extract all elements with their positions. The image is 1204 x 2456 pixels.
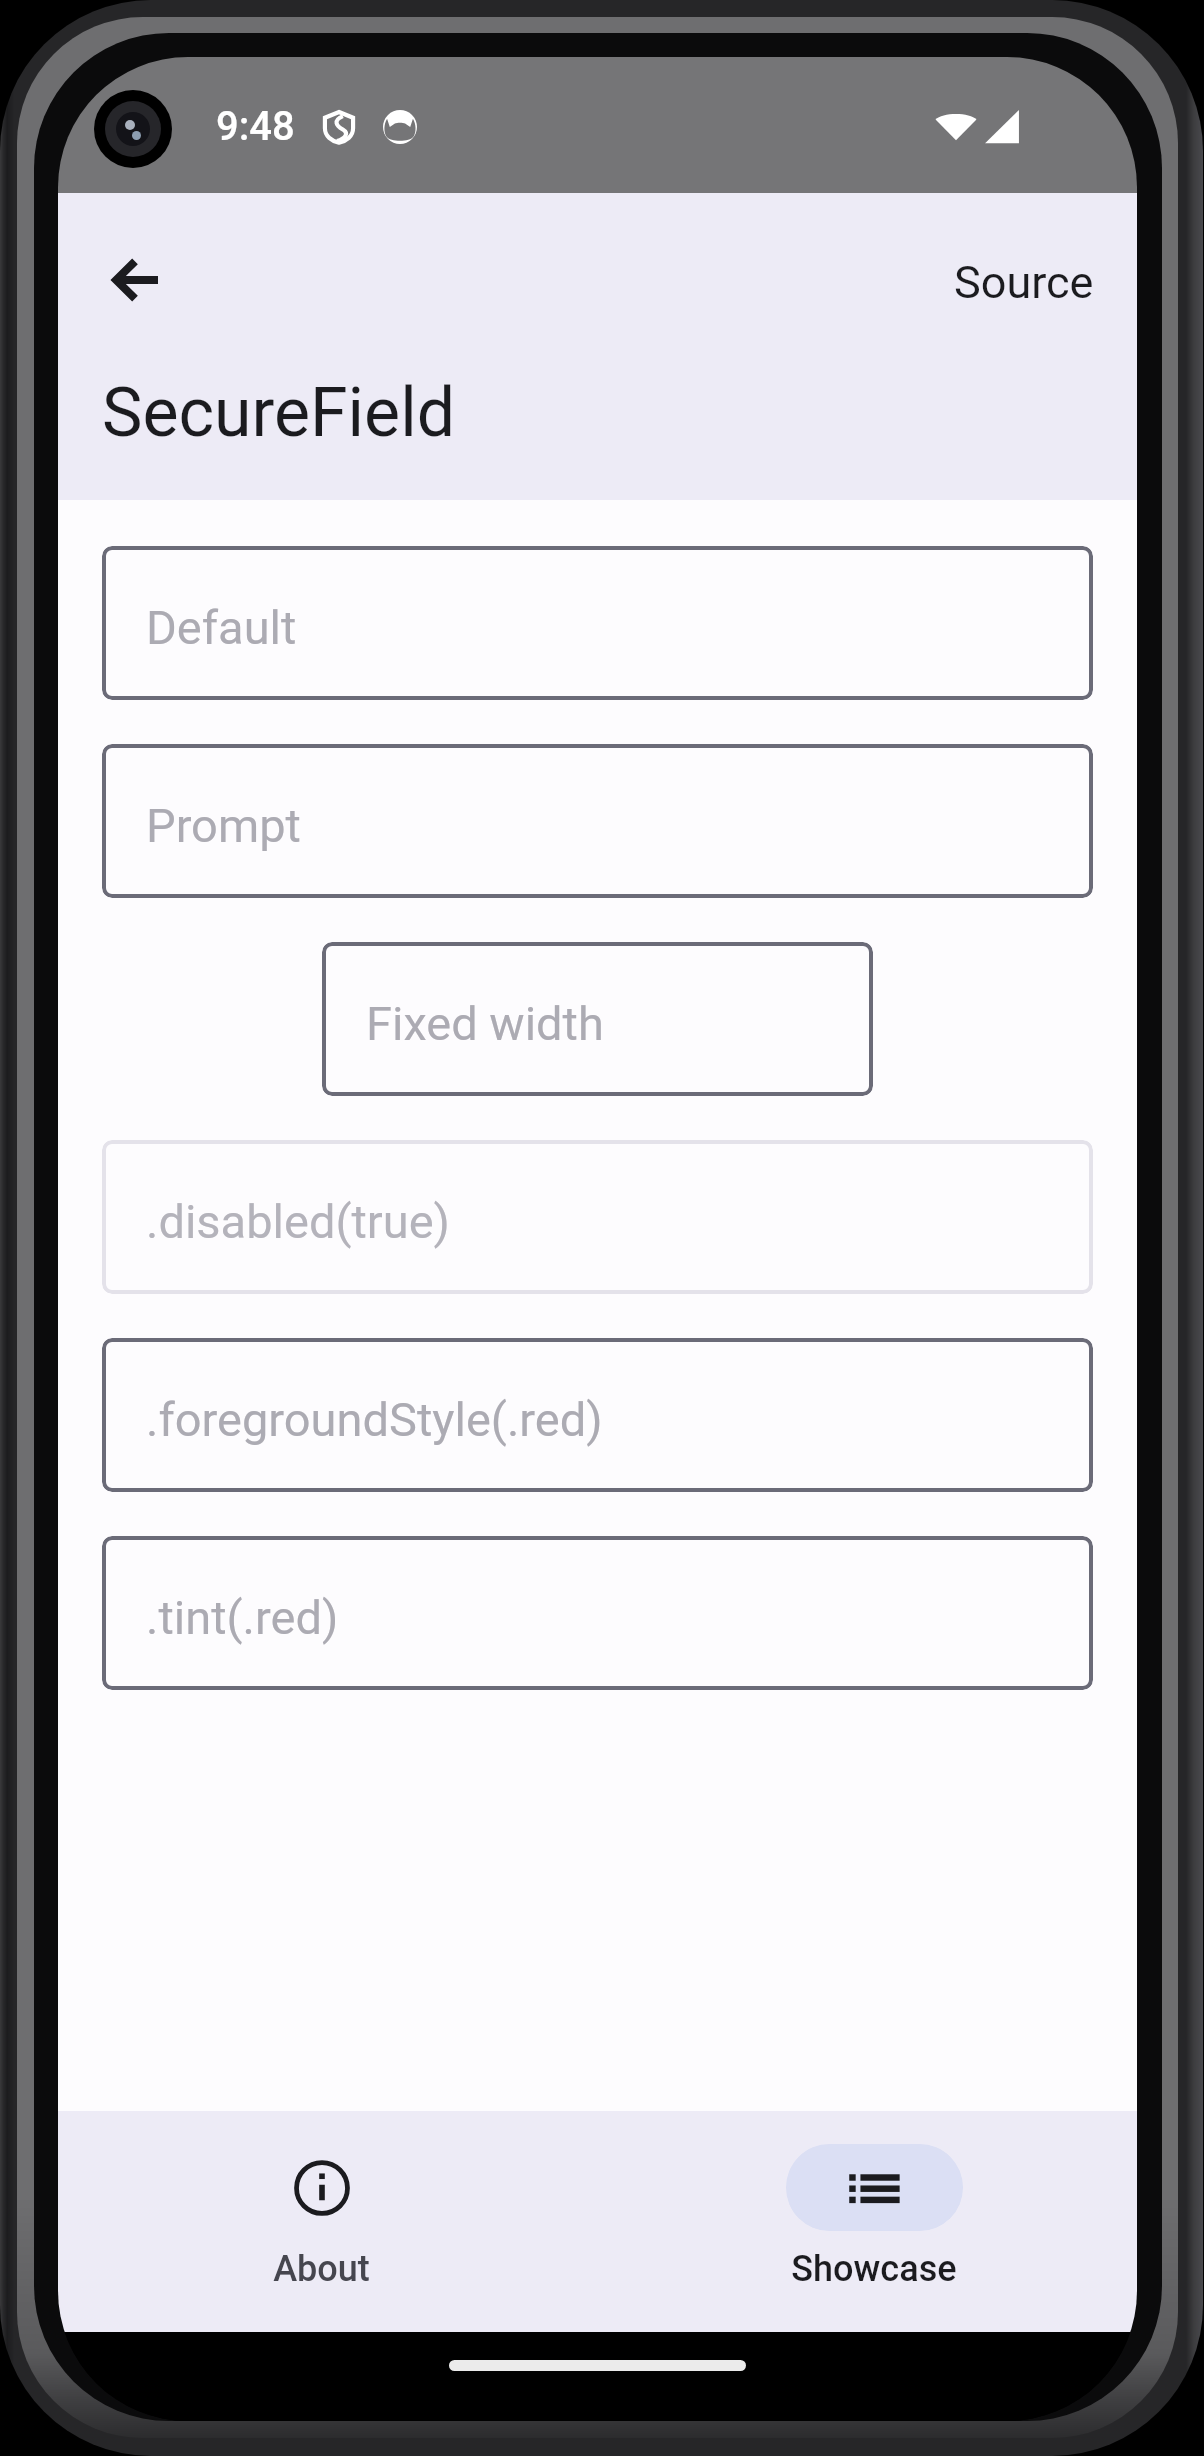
- staticText: Source: [954, 256, 1094, 309]
- button[interactable]: Showcase: [604, 2111, 1137, 2332]
- staticText: About: [273, 2248, 370, 2290]
- button[interactable]: Source: [944, 244, 1104, 321]
- button[interactable]: Fixed width: [322, 942, 873, 1096]
- staticText: .foregroundStyle(.red): [146, 1392, 603, 1447]
- button[interactable]: About: [58, 2111, 591, 2332]
- button[interactable]: .foregroundStyle(.red): [102, 1338, 1093, 1492]
- button[interactable]: .tint(.red): [102, 1536, 1093, 1690]
- staticText: 9:48: [216, 103, 295, 150]
- button[interactable]: .disabled(true): [102, 1140, 1093, 1294]
- staticText: .tint(.red): [146, 1590, 339, 1645]
- staticText: Default: [146, 600, 297, 655]
- staticText: Fixed width: [366, 996, 604, 1051]
- button[interactable]: Prompt: [102, 744, 1093, 898]
- staticText: .disabled(true): [146, 1194, 450, 1249]
- staticText: Prompt: [146, 798, 301, 853]
- staticText: Showcase: [791, 2248, 957, 2290]
- button[interactable]: Back: [89, 234, 181, 326]
- button[interactable]: Default: [102, 546, 1093, 700]
- staticText: SecureField: [102, 373, 456, 453]
